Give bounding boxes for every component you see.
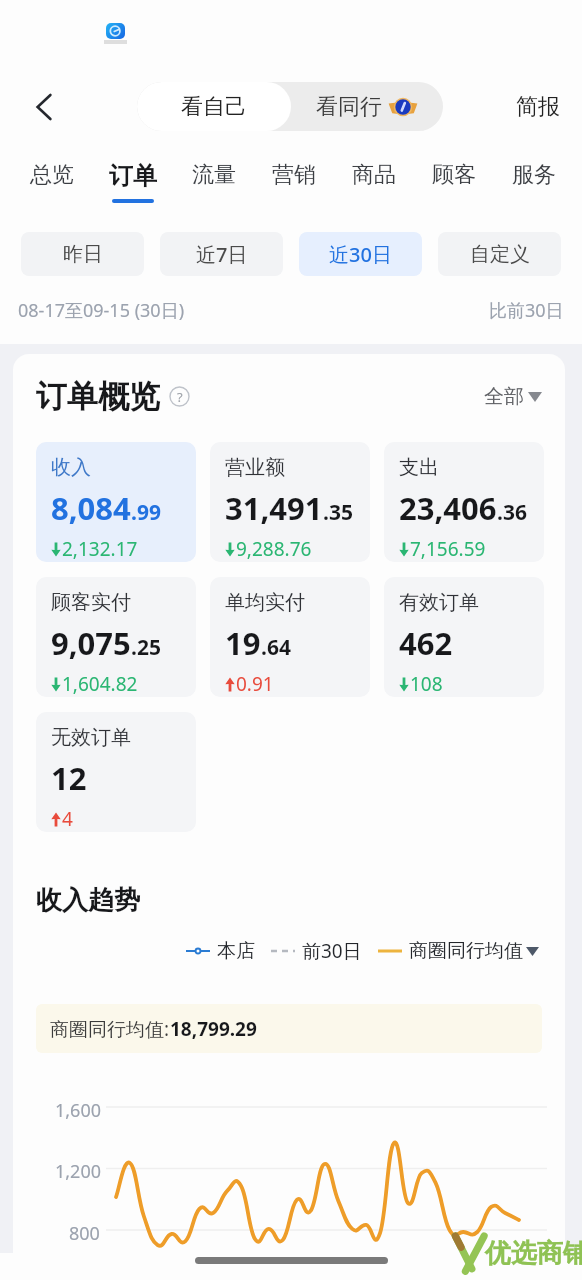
- staticText: 支出: [399, 455, 439, 480]
- staticText: 19: [225, 622, 261, 664]
- staticText: 流量: [192, 161, 236, 189]
- staticText: 7,156.59: [410, 536, 486, 562]
- staticText: 顾客: [432, 161, 476, 189]
- button[interactable]: 支出: [384, 442, 544, 562]
- staticText: 2,132.17: [62, 536, 138, 562]
- button[interactable]: 营销: [254, 145, 334, 197]
- button[interactable]: 收入: [36, 442, 196, 562]
- staticText: 前30日: [302, 938, 362, 964]
- staticText: 0.91: [236, 671, 274, 697]
- staticText: 总览: [30, 161, 74, 189]
- staticText: 23,406: [399, 487, 497, 529]
- staticText: 优选商铺: [485, 1237, 582, 1270]
- button[interactable]: 单均实付: [210, 577, 370, 697]
- staticText: 单均实付: [225, 590, 305, 615]
- staticText: 收入: [51, 455, 91, 480]
- staticText: 看同行: [316, 93, 382, 121]
- staticText: 营业额: [225, 455, 285, 480]
- staticText: 订单概览: [36, 377, 160, 416]
- staticText: 商圈同行均值: [409, 939, 523, 963]
- staticText: 服务: [512, 161, 556, 189]
- button[interactable]: 顾客实付: [36, 577, 196, 697]
- staticText: 商圈同行均值:: [50, 1016, 170, 1042]
- staticText: .64: [261, 633, 291, 662]
- staticText: .25: [131, 633, 161, 662]
- staticText: 08-17至09-15 (30日): [18, 298, 185, 323]
- staticText: 1,604.82: [62, 671, 138, 697]
- button[interactable]: 近7日: [160, 232, 283, 276]
- staticText: 比前30日: [489, 298, 564, 323]
- staticText: 无效订单: [51, 725, 131, 750]
- staticText: .36: [497, 498, 527, 527]
- staticText: 9,075: [51, 622, 131, 664]
- staticText: 1,600: [55, 1098, 102, 1123]
- staticText: 31,491: [225, 487, 323, 529]
- button[interactable]: 近30日: [299, 232, 422, 276]
- staticText: 商品: [352, 161, 396, 189]
- staticText: .35: [323, 498, 353, 527]
- staticText: 营销: [272, 161, 316, 189]
- staticText: 自定义: [470, 242, 530, 267]
- staticText: 本店: [217, 939, 255, 963]
- staticText: 收入趋势: [36, 884, 140, 917]
- staticText: 1,200: [55, 1159, 102, 1184]
- staticText: 800: [69, 1221, 100, 1246]
- staticText: 18,799.29: [170, 1016, 257, 1042]
- staticText: 近30日: [329, 241, 392, 268]
- staticText: 顾客实付: [51, 590, 131, 615]
- button[interactable]: 自定义: [438, 232, 561, 276]
- staticText: 462: [399, 622, 453, 664]
- staticText: ?: [177, 388, 183, 406]
- staticText: 近7日: [196, 241, 248, 268]
- button[interactable]: 服务: [494, 145, 574, 197]
- button[interactable]: 有效订单: [384, 577, 544, 697]
- staticText: 108: [410, 671, 443, 697]
- staticText: 4: [62, 806, 73, 832]
- button[interactable]: 无效订单: [36, 712, 196, 832]
- button[interactable]: 看自己: [137, 82, 291, 131]
- staticText: 9,288.76: [236, 536, 312, 562]
- button[interactable]: 昨日: [21, 232, 144, 276]
- staticText: 看自己: [181, 93, 247, 121]
- button[interactable]: 商品: [334, 145, 414, 197]
- button[interactable]: Back: [22, 85, 66, 129]
- button[interactable]: 看同行: [291, 82, 443, 131]
- button[interactable]: 订单: [92, 145, 173, 203]
- button[interactable]: 总览: [11, 145, 92, 197]
- button[interactable]: 顾客: [414, 145, 494, 197]
- staticText: 简报: [516, 93, 560, 121]
- staticText: 订单: [109, 161, 157, 191]
- staticText: 昨日: [63, 242, 103, 267]
- button[interactable]: 简报: [516, 93, 560, 121]
- staticText: 有效订单: [399, 590, 479, 615]
- button[interactable]: 全部: [484, 384, 542, 409]
- button[interactable]: 流量: [173, 145, 254, 197]
- staticText: .99: [131, 498, 161, 527]
- staticText: 全部: [484, 384, 524, 409]
- staticText: 12: [51, 757, 87, 799]
- staticText: 8,084: [51, 487, 131, 529]
- button[interactable]: 营业额: [210, 442, 370, 562]
